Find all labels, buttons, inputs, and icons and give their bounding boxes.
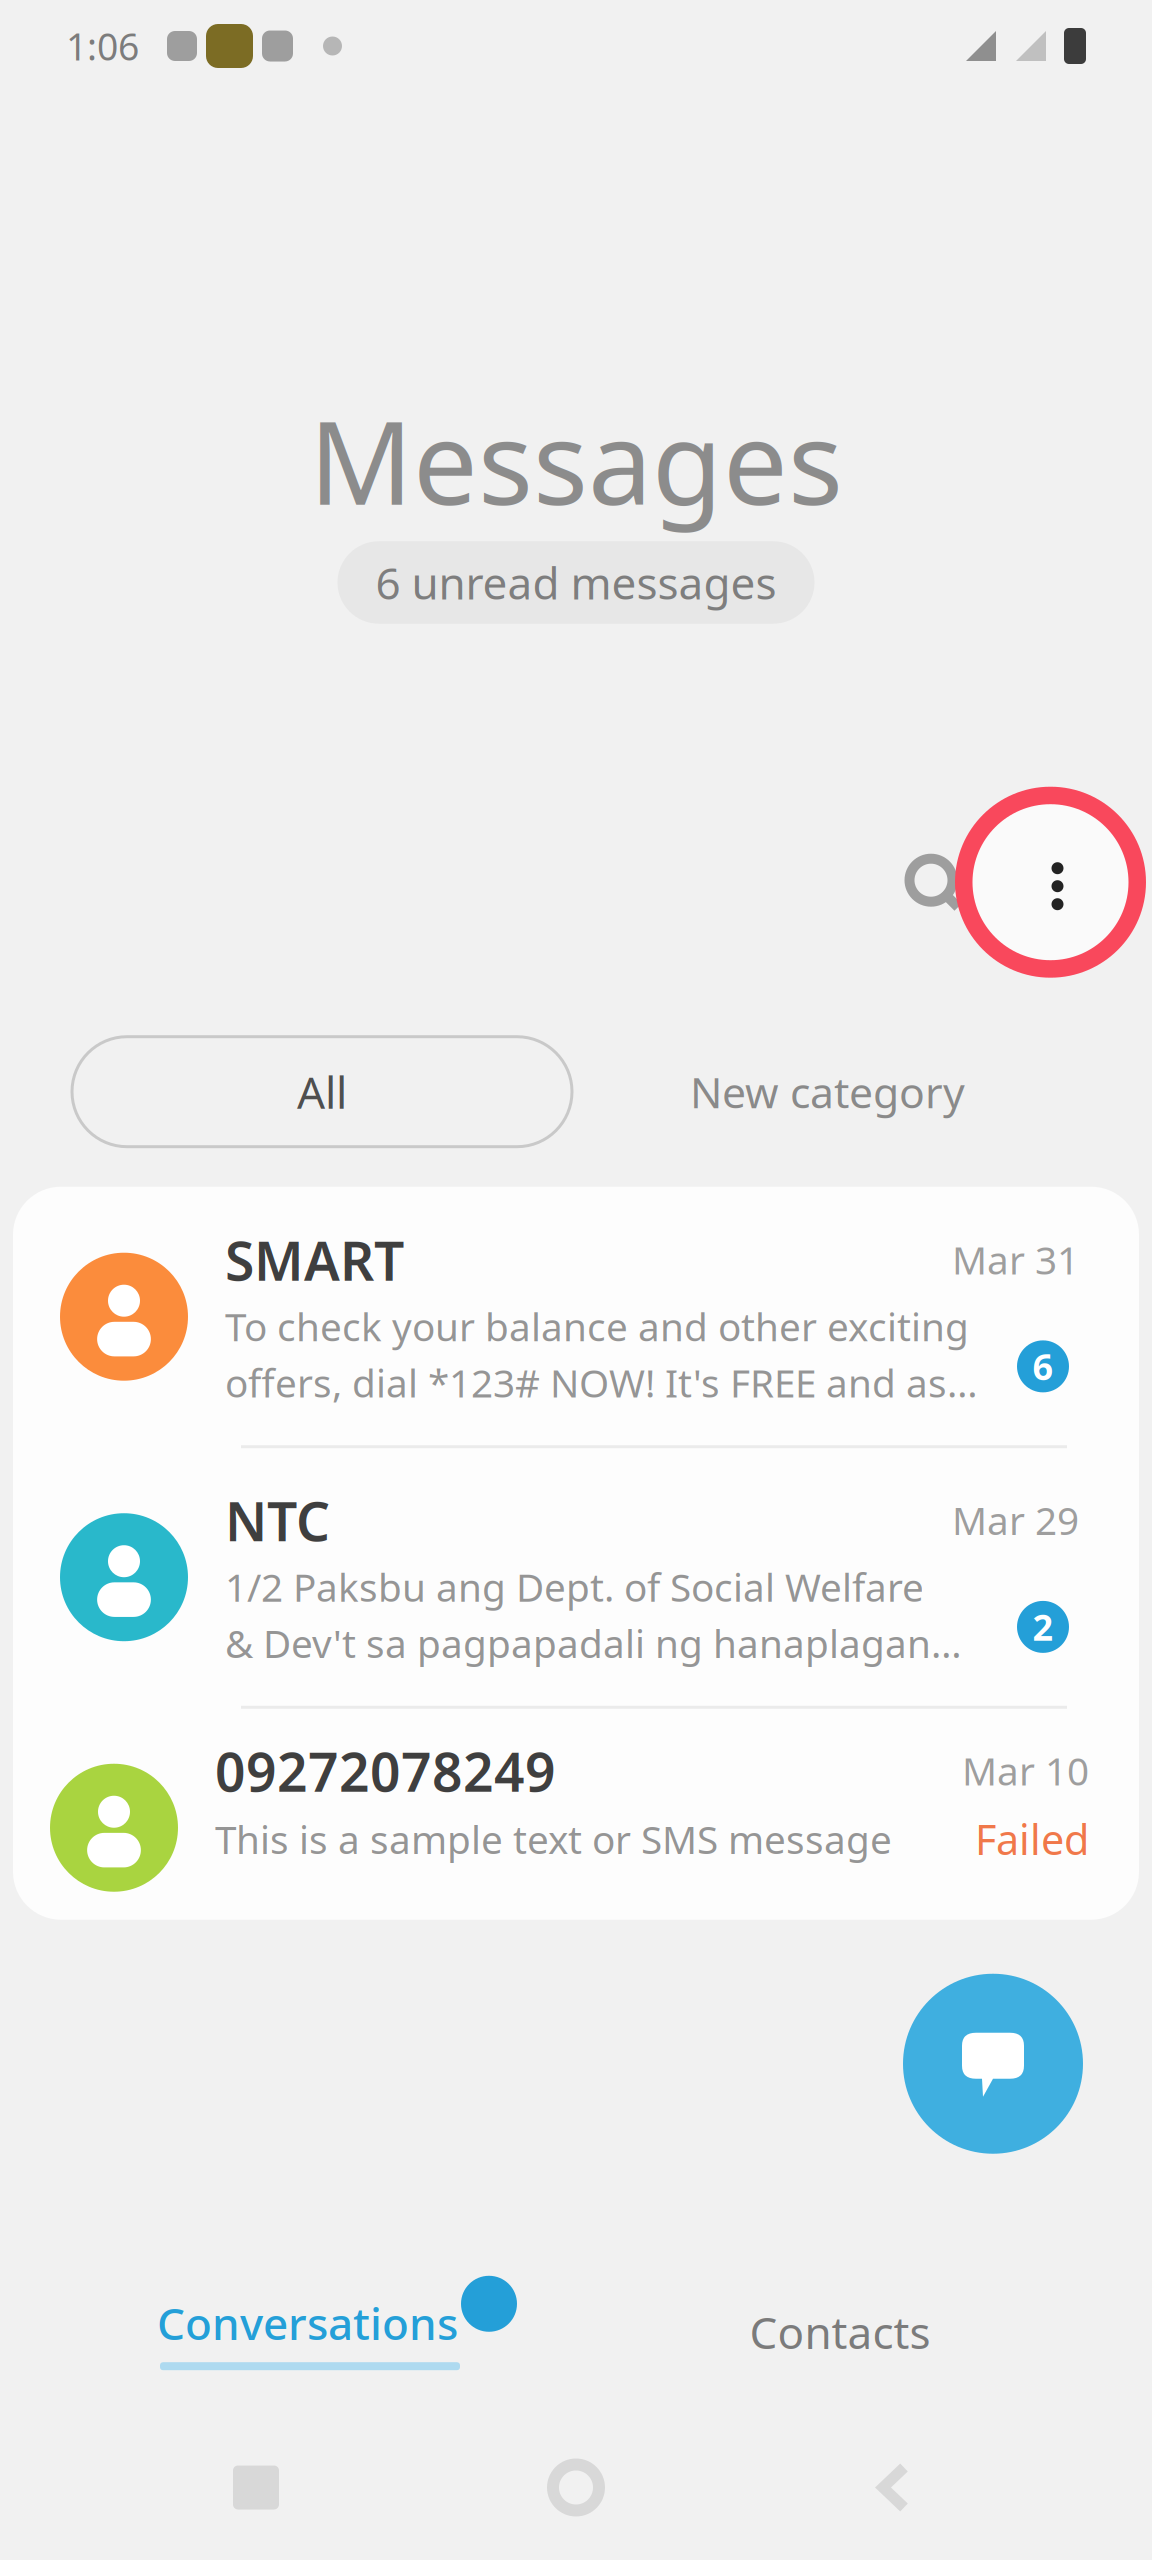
staticText: Mar 31 — [952, 1234, 1079, 1285]
button[interactable]: SMART — [13, 1225, 1139, 1408]
button[interactable]: All — [72, 1037, 572, 1147]
button[interactable]: NTC — [13, 1485, 1139, 1669]
button[interactable]: Contacts — [576, 2285, 1152, 2415]
staticText: SMART — [225, 1225, 404, 1295]
staticText: NTC — [225, 1485, 330, 1556]
staticText: 6 — [1032, 1342, 1053, 1390]
staticText: Failed — [975, 1812, 1089, 1866]
button[interactable]: New category — [572, 1037, 967, 1147]
button[interactable]: Back — [814, 2422, 974, 2552]
staticText: 1:06 — [66, 21, 139, 71]
staticText: offers, dial *123# NOW! It's FREE and as… — [225, 1357, 985, 1408]
staticText: Contacts — [749, 2303, 930, 2361]
staticText: & Dev't sa pagpapadali ng hanaplagang … — [225, 1617, 985, 1669]
staticText: All — [297, 1062, 347, 1121]
button[interactable]: New conversation — [903, 1974, 1083, 2154]
staticText: 09272078249 — [215, 1736, 556, 1806]
button[interactable]: Search — [867, 787, 955, 978]
staticText: New category — [690, 1063, 965, 1120]
staticText: Conversations — [157, 2294, 458, 2352]
staticText: 6 unread messages — [375, 553, 776, 612]
staticText: 2 — [1032, 1603, 1053, 1651]
staticText: To check your balance and other exciting — [225, 1300, 969, 1352]
staticText: Messages — [309, 384, 843, 536]
staticText: This is a sample text or SMS message — [215, 1813, 892, 1865]
staticText: Mar 29 — [952, 1494, 1079, 1545]
staticText: 1/2 Paksbu ang Dept. of Social Welfare — [225, 1561, 924, 1612]
button[interactable]: 09272078249 — [3, 1736, 1149, 1892]
staticText: Mar 10 — [962, 1745, 1089, 1796]
button[interactable]: Home — [496, 2422, 656, 2552]
button[interactable]: Conversations — [0, 2285, 576, 2415]
button[interactable]: More options — [955, 787, 1146, 978]
button[interactable]: Recent apps — [176, 2422, 336, 2552]
